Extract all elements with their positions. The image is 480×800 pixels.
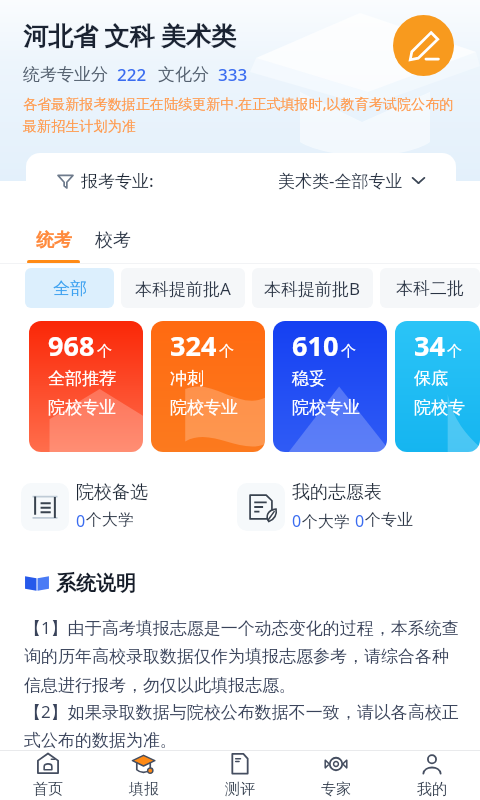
staticText: 【1】由于高考填报志愿是一个动态变化的过程，本系统查询的历年高校录取数据仅作为填…: [24, 616, 460, 696]
button[interactable]: 填报: [96, 752, 192, 799]
staticText: 本科提前批B: [264, 277, 361, 300]
button[interactable]: 610: [273, 321, 387, 452]
staticText: 稳妥: [292, 368, 326, 389]
staticText: 我的: [417, 780, 447, 799]
staticText: 个专业: [365, 510, 413, 530]
staticText: 报考专业:: [81, 169, 154, 192]
staticText: 0: [76, 510, 86, 532]
button[interactable]: 324: [151, 321, 265, 452]
button[interactable]: 我的志愿表: [237, 481, 413, 532]
staticText: 院校专业: [292, 397, 360, 418]
button[interactable]: 统考: [27, 208, 80, 264]
staticText: 测评: [225, 780, 255, 799]
staticText: 保底: [414, 368, 448, 389]
staticText: 冲刺: [170, 368, 204, 389]
button[interactable]: 本科提前批A: [121, 268, 245, 308]
staticText: 专家: [321, 780, 351, 799]
staticText: 校考: [95, 229, 131, 252]
staticText: 0: [292, 510, 302, 532]
staticText: 全部: [53, 278, 87, 299]
staticText: 324: [170, 327, 217, 364]
staticText: 个: [341, 342, 356, 361]
staticText: 系统说明: [56, 571, 136, 596]
staticText: 我的志愿表: [292, 481, 382, 504]
staticText: 院校专业: [414, 397, 480, 418]
staticText: 个: [447, 342, 462, 361]
button[interactable]: 我的: [384, 752, 480, 799]
staticText: 统考专业分: [23, 64, 108, 85]
staticText: 333: [218, 63, 248, 86]
button[interactable]: 院校备选: [21, 481, 148, 532]
staticText: 院校专业: [48, 397, 116, 418]
button[interactable]: 专家: [288, 752, 384, 799]
staticText: 全部推荐: [48, 368, 116, 389]
staticText: 美术类-全部专业: [278, 169, 403, 192]
staticText: 个大学: [302, 510, 355, 532]
staticText: 院校专业: [170, 397, 238, 418]
staticText: 填报: [129, 780, 159, 799]
button[interactable]: 968: [29, 321, 143, 452]
staticText: 34: [414, 327, 445, 364]
button[interactable]: 报考专业:: [26, 153, 456, 208]
button[interactable]: 测评: [192, 752, 288, 799]
button[interactable]: 34: [395, 321, 480, 452]
staticText: 个: [219, 342, 234, 361]
staticText: 968: [48, 327, 95, 364]
staticText: 院校备选: [76, 481, 148, 504]
staticText: 河北省 文科 美术类: [23, 18, 237, 52]
staticText: 0: [355, 510, 365, 532]
staticText: 个大学: [86, 510, 134, 530]
staticText: 各省最新报考数据正在陆续更新中.在正式填报时,以教育考试院公布的 最新招生计划为…: [23, 94, 454, 136]
button[interactable]: 校考: [95, 208, 131, 252]
staticText: 个: [97, 342, 112, 361]
button[interactable]: 本科提前批B: [252, 268, 373, 308]
button[interactable]: 本科二批: [380, 268, 480, 308]
staticText: 222: [117, 63, 147, 86]
staticText: 首页: [33, 780, 63, 799]
button[interactable]: 编辑志愿: [393, 15, 454, 76]
staticText: 【2】如果录取数据与院校公布数据不一致，请以各高校正式公布的数据为准。: [24, 700, 460, 751]
staticText: 统考: [36, 229, 72, 252]
button[interactable]: 全部: [25, 268, 114, 308]
button[interactable]: 首页: [0, 752, 96, 799]
staticText: 文化分: [158, 64, 209, 85]
staticText: 610: [292, 327, 339, 364]
staticText: 本科提前批A: [135, 277, 231, 300]
staticText: 本科二批: [396, 278, 464, 299]
